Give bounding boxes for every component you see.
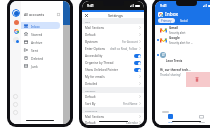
button[interactable]: Detailed — [85, 80, 141, 87]
button[interactable]: All accounts — [24, 11, 60, 17]
button[interactable]: Show Unlinked Pointer — [85, 66, 141, 73]
button[interactable]: Bysteam — [85, 38, 141, 45]
staticText: Security alert — [169, 31, 186, 35]
staticText: Mail — [168, 120, 173, 123]
button[interactable]: Social — [177, 18, 191, 23]
button[interactable]: Account 2 — [12, 18, 20, 26]
staticText: Calendar — [126, 121, 138, 125]
staticText: Meet — [199, 120, 205, 123]
button[interactable]: Junk — [21, 62, 60, 69]
staticText: LIST — [85, 20, 90, 23]
button[interactable]: Accessibility — [85, 52, 141, 59]
button[interactable]: Archive — [21, 38, 60, 45]
button[interactable]: Account all — [12, 9, 20, 17]
staticText: LT — [162, 53, 165, 57]
button[interactable]: Add account — [12, 36, 20, 44]
staticText: Default — [85, 33, 96, 37]
staticText: Inbox — [165, 11, 179, 18]
button[interactable]: Mail — [155, 114, 186, 123]
staticText: Starred — [31, 32, 43, 36]
staticText: Mail Sections — [85, 26, 105, 30]
staticText: Accessibility — [85, 54, 103, 58]
staticText: GENERAL — [85, 89, 96, 92]
staticText: My for emails — [85, 75, 105, 79]
button[interactable]: LT — [155, 50, 210, 77]
staticText: Bysteam — [85, 40, 98, 44]
staticText: First Name — [123, 102, 138, 106]
staticText: Thanks! sharing! — [160, 73, 181, 77]
button[interactable]: Menu — [158, 12, 163, 17]
staticText: Security alert for ... — [169, 41, 193, 45]
staticText: For Account — [122, 40, 138, 44]
button[interactable]: Google — [157, 35, 210, 45]
button[interactable]: Close — [82, 12, 91, 18]
staticText: Show Unlinked Pointer — [85, 68, 119, 72]
button[interactable]: Deleted — [21, 54, 60, 61]
staticText: Enter Options — [85, 47, 106, 51]
button[interactable]: Starred — [21, 30, 60, 37]
button[interactable]: Organise by Thread — [85, 59, 141, 66]
button[interactable]: Default — [85, 31, 141, 38]
button[interactable]: Meet — [186, 114, 210, 123]
button[interactable]: Sent — [21, 46, 60, 53]
button[interactable]: Default — [85, 120, 141, 125]
button[interactable]: Settings — [13, 94, 18, 99]
staticText: Sent — [31, 48, 38, 52]
staticText: Deleted — [31, 56, 44, 60]
staticText: Social — [180, 19, 188, 23]
button[interactable]: Inbox — [21, 22, 60, 29]
staticText: Google — [169, 36, 180, 40]
button[interactable]: Google account — [12, 27, 20, 35]
button[interactable]: Mail Sections — [85, 113, 141, 120]
button[interactable]: Enter Options — [85, 45, 141, 52]
staticText: Leon Trevis — [166, 59, 183, 63]
button[interactable]: My for emails — [85, 73, 141, 80]
staticText: Primary — [161, 19, 172, 23]
button[interactable]: Primary — [158, 18, 175, 23]
staticText: CALENDAR — [85, 109, 98, 112]
button[interactable]: Feedback — [13, 110, 18, 115]
staticText: Hi, our thereof tech... — [160, 68, 191, 72]
staticText: Junk — [31, 64, 38, 68]
button[interactable]: Sort By — [85, 100, 141, 107]
staticText: Sort By — [85, 102, 96, 106]
staticText: Settings — [108, 13, 123, 18]
staticText: Gmail — [169, 26, 178, 30]
staticText: Inbox — [31, 24, 40, 28]
staticText: Mail Sections — [85, 115, 105, 119]
button[interactable]: Help — [13, 102, 18, 107]
button[interactable]: Gmail — [157, 25, 210, 35]
staticText: Default — [85, 121, 96, 125]
staticText: 9:41 — [87, 3, 94, 8]
staticText: Default — [85, 95, 96, 99]
staticText: Organise by Thread — [85, 61, 114, 65]
staticText: 9:41 — [160, 3, 167, 8]
button[interactable]: Default — [85, 93, 141, 100]
staticText: draft as Read, Follow — [110, 47, 138, 51]
staticText: Detailed — [85, 82, 98, 86]
staticText: All accounts — [24, 12, 45, 17]
button[interactable]: Mail Sections — [85, 24, 141, 31]
staticText: Archive — [31, 40, 43, 44]
